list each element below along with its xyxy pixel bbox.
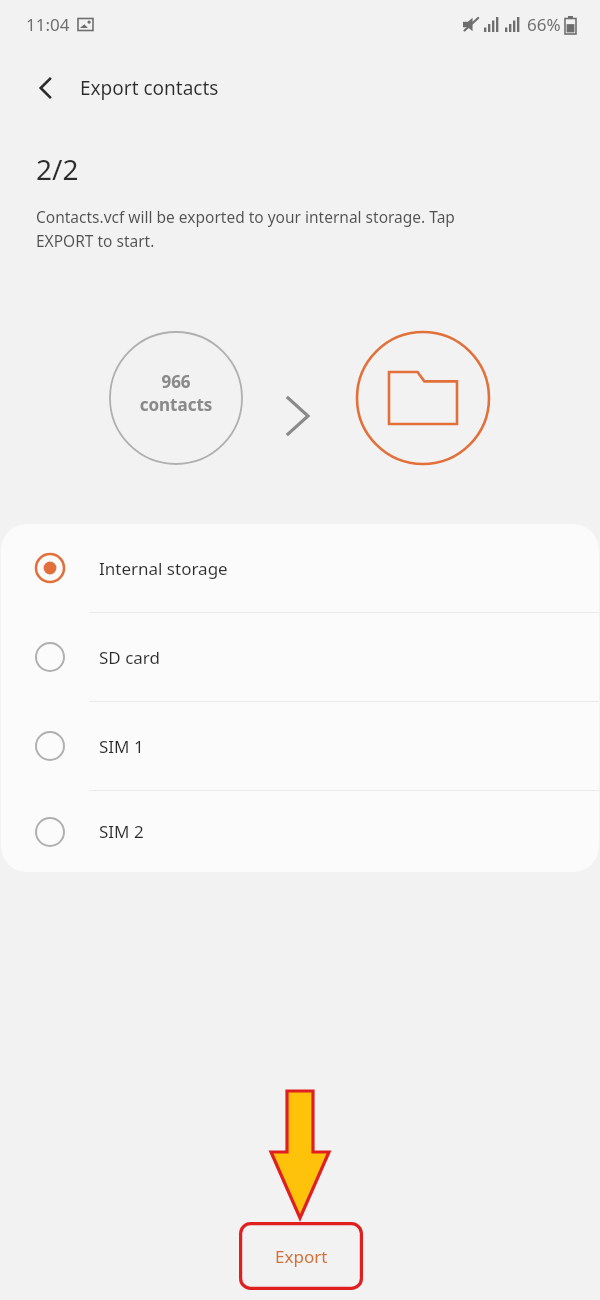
button[interactable]: SIM 2 <box>1 791 599 872</box>
staticText: SIM 2 <box>99 820 144 843</box>
staticText: 966 <box>116 370 236 393</box>
staticText: Contacts.vcf will be exported to your in… <box>36 206 455 251</box>
staticText: SD card <box>99 646 160 669</box>
button[interactable]: SIM 1 <box>1 702 599 790</box>
staticText: 2/2 <box>36 150 79 188</box>
staticText: Export contacts <box>80 75 219 101</box>
staticText: 66% <box>527 13 561 36</box>
button[interactable]: Back <box>20 62 72 114</box>
button[interactable]: SD card <box>1 613 599 701</box>
staticText: 11:04 <box>26 13 70 36</box>
staticText: SIM 1 <box>99 735 144 758</box>
staticText: Export <box>275 1245 328 1268</box>
staticText: Internal storage <box>99 557 228 580</box>
button[interactable]: Internal storage <box>1 524 599 612</box>
button[interactable]: Export <box>239 1222 363 1290</box>
staticText: contacts <box>116 393 236 416</box>
